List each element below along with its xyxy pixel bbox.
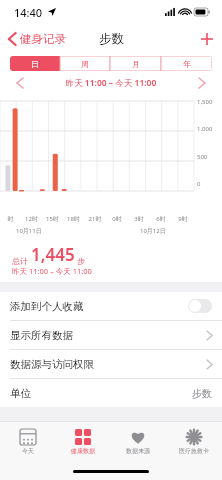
staticText: 12时 — [21, 215, 42, 223]
staticText: 步数 — [99, 31, 124, 47]
staticText: 0时 — [106, 215, 128, 223]
staticText: 时 — [0, 215, 21, 223]
staticText: 步数 — [192, 387, 212, 400]
staticText: 健康数据 — [71, 447, 95, 455]
button[interactable]: 数据源与访问权限 — [0, 350, 222, 378]
button[interactable]: 今天 — [0, 422, 55, 462]
button[interactable]: 显示所有数据 — [0, 321, 222, 349]
button[interactable]: Previous — [10, 73, 30, 93]
staticText: 月 — [132, 59, 140, 69]
button[interactable]: 健身记录 — [0, 24, 72, 54]
staticText: 1,445 — [31, 243, 75, 266]
staticText: 昨天 11:00 – 今天 11:00 — [12, 266, 92, 276]
button[interactable]: 医疗急救卡 — [166, 422, 222, 462]
button[interactable]: 单位 — [0, 379, 222, 407]
staticText: 500 — [197, 153, 208, 161]
staticText: 9时 — [172, 215, 194, 223]
button[interactable]: 添加到个人收藏 — [0, 292, 222, 320]
staticText: 总计 — [12, 255, 31, 266]
staticText: 18时 — [63, 215, 84, 223]
staticText: 1,500 — [197, 98, 213, 106]
staticText: 21时 — [84, 215, 106, 223]
button[interactable]: 日 — [10, 56, 60, 71]
staticText: 添加到个人收藏 — [10, 300, 188, 313]
staticText: 显示所有数据 — [10, 329, 207, 342]
button[interactable]: 周 — [60, 56, 110, 71]
staticText: 14:40 — [14, 5, 43, 20]
staticText: 数据来源 — [126, 447, 150, 455]
staticText: 昨天 11:00 – 今天 11:00 — [30, 77, 192, 89]
staticText: 医疗急救卡 — [179, 447, 209, 455]
staticText: 今天 — [22, 447, 34, 455]
button[interactable]: 年 — [161, 56, 212, 71]
staticText: 0 — [197, 180, 201, 188]
button[interactable]: Next — [192, 73, 212, 93]
staticText: 日 — [31, 59, 39, 69]
button[interactable]: 健康数据 — [55, 422, 110, 462]
staticText: 步 — [75, 255, 86, 266]
button[interactable]: 月 — [110, 56, 161, 71]
staticText: 单位 — [10, 387, 192, 400]
staticText: 10月11日 — [16, 227, 42, 235]
button[interactable]: Add — [192, 24, 222, 54]
staticText: 数据源与访问权限 — [10, 358, 207, 371]
staticText: 健身记录 — [20, 32, 66, 46]
button[interactable]: 数据来源 — [110, 422, 166, 462]
staticText: 15时 — [42, 215, 63, 223]
staticText: 3时 — [128, 215, 150, 223]
staticText: 年 — [183, 59, 191, 69]
staticText: 周 — [81, 59, 89, 69]
staticText: 1,000 — [197, 125, 213, 133]
staticText: 6时 — [150, 215, 172, 223]
staticText: 10月12日 — [140, 227, 166, 235]
